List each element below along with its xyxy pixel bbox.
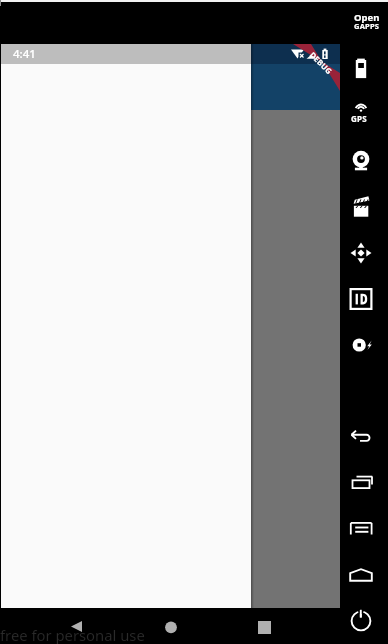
button[interactable]: Recents xyxy=(243,608,285,644)
staticText: 4:41 xyxy=(13,46,36,62)
staticText: Open xyxy=(354,11,380,24)
button[interactable]: Home xyxy=(340,553,388,597)
button[interactable]: Battery xyxy=(340,47,388,91)
button[interactable]: Back xyxy=(340,415,388,459)
button[interactable]: Power xyxy=(340,599,388,643)
button[interactable]: D-pad xyxy=(340,231,388,275)
button[interactable]: Screenshot xyxy=(340,323,388,367)
button[interactable]: Overview xyxy=(340,460,388,504)
button[interactable]: Webcam xyxy=(340,138,388,182)
staticText: DEBUG xyxy=(302,44,340,82)
button[interactable]: GPS xyxy=(340,91,388,135)
staticText: GAPPS xyxy=(354,21,380,31)
staticText: GPS xyxy=(351,113,368,124)
button[interactable]: Record screen xyxy=(340,185,388,229)
staticText: free for personal use xyxy=(0,625,145,644)
button[interactable]: Device ID xyxy=(340,277,388,321)
button[interactable]: Home xyxy=(150,608,192,644)
button[interactable]: Menu xyxy=(340,506,388,550)
button[interactable]: Back xyxy=(56,608,98,644)
